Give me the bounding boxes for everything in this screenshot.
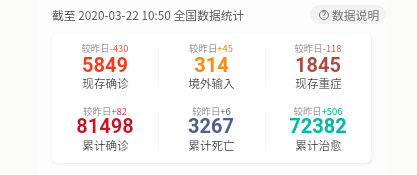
staticText: 较昨日+82 (83, 104, 127, 118)
staticText: 314 (194, 53, 229, 76)
staticText: 1845 (295, 53, 341, 76)
button[interactable] (265, 97, 371, 152)
button[interactable] (158, 97, 264, 152)
button[interactable] (52, 34, 158, 89)
staticText: 81498 (76, 114, 134, 137)
other: 数据说明 (319, 10, 329, 20)
staticText: 较昨日+45 (189, 41, 233, 55)
staticText: 现存确诊 (82, 75, 129, 92)
staticText: 72382 (289, 114, 347, 137)
staticText: 累计死亡 (188, 137, 235, 154)
staticText: ? (322, 10, 327, 20)
staticText: 累计确诊 (82, 137, 129, 154)
staticText: 较昨日-118 (294, 41, 342, 55)
button[interactable] (52, 97, 158, 152)
staticText: 现存重症 (295, 75, 342, 92)
staticText: 5849 (82, 53, 128, 76)
staticText: 境外输入 (188, 75, 235, 92)
button[interactable] (158, 34, 264, 89)
staticText: 累计治愈 (295, 137, 342, 154)
staticText: 较昨日+6 (192, 104, 231, 118)
button[interactable]: 数据说明 (310, 5, 386, 24)
button[interactable] (265, 34, 371, 89)
staticText: 截至 2020-03-22 10:50 全国数据统计 (52, 6, 245, 23)
staticText: 数据说明 (332, 6, 380, 23)
staticText: 3267 (188, 114, 234, 137)
staticText: 较昨日+506 (293, 104, 343, 118)
staticText: 较昨日-430 (81, 41, 129, 55)
